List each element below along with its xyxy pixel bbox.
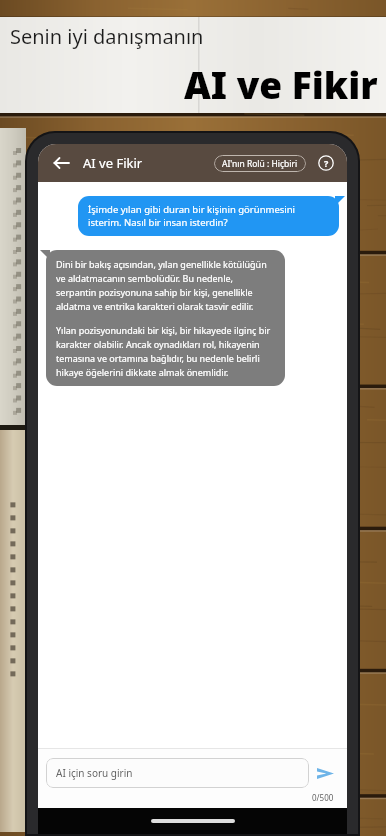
button[interactable]: AI'nın Rolü : Hiçbiri <box>214 155 306 172</box>
staticText: 0/500 <box>312 792 334 803</box>
staticText: Dini bir bakış açısından, yılan genellik… <box>56 258 275 312</box>
staticText: AI için soru girin <box>56 766 133 780</box>
staticText: AI ve Fikir <box>184 59 378 109</box>
button[interactable]: Send <box>309 757 341 789</box>
button[interactable]: Dini bir bakış açısından, yılan genellik… <box>46 250 285 386</box>
staticText: İşimde yılan gibi duran bir kişinin görü… <box>88 203 329 229</box>
staticText: ? <box>324 157 329 169</box>
button[interactable]: AI için soru girin <box>46 758 309 788</box>
button[interactable]: Back <box>48 150 74 176</box>
button[interactable]: İşimde yılan gibi duran bir kişinin görü… <box>78 196 339 236</box>
staticText: AI ve Fikir <box>83 154 143 172</box>
staticText: AI'nın Rolü : Hiçbiri <box>222 158 298 170</box>
staticText: Yılan pozisyonundaki bir kişi, bir hikay… <box>56 324 275 378</box>
staticText: Senin iyi danışmanın <box>10 23 204 50</box>
button[interactable]: Help <box>315 152 337 174</box>
